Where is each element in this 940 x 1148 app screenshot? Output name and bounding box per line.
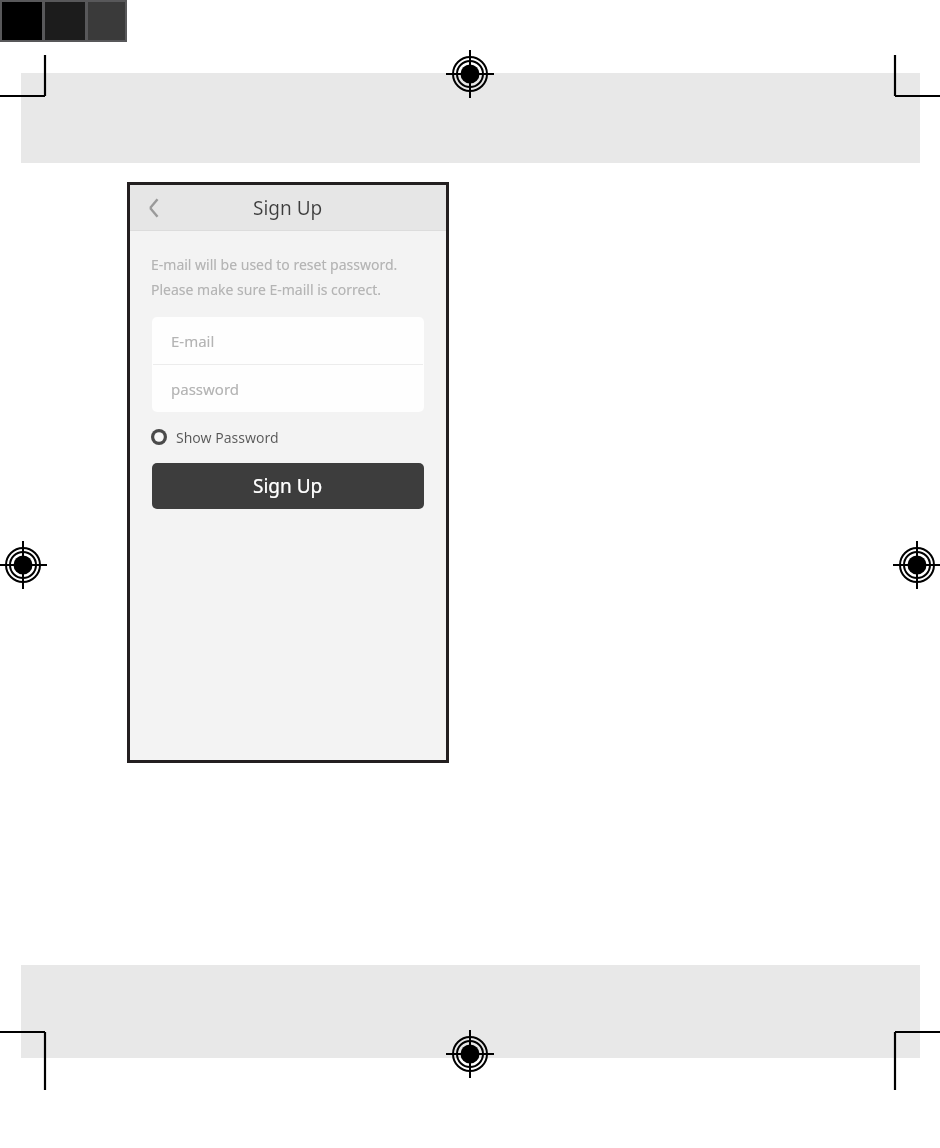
staticText: E-mail: [171, 331, 215, 351]
button[interactable]: Sign Up: [152, 463, 424, 509]
button[interactable]: Show Password: [151, 423, 279, 451]
button[interactable]: E-mail: [152, 317, 424, 364]
button[interactable]: Back: [130, 185, 178, 230]
staticText: Show Password: [176, 428, 279, 447]
staticText: Sign Up: [253, 195, 323, 221]
staticText: Sign Up: [253, 473, 323, 499]
staticText: Please make sure E-maill is correct.: [151, 280, 381, 299]
staticText: password: [171, 379, 239, 399]
button[interactable]: password: [152, 365, 424, 412]
staticText: E-mail will be used to reset password.: [151, 255, 398, 274]
